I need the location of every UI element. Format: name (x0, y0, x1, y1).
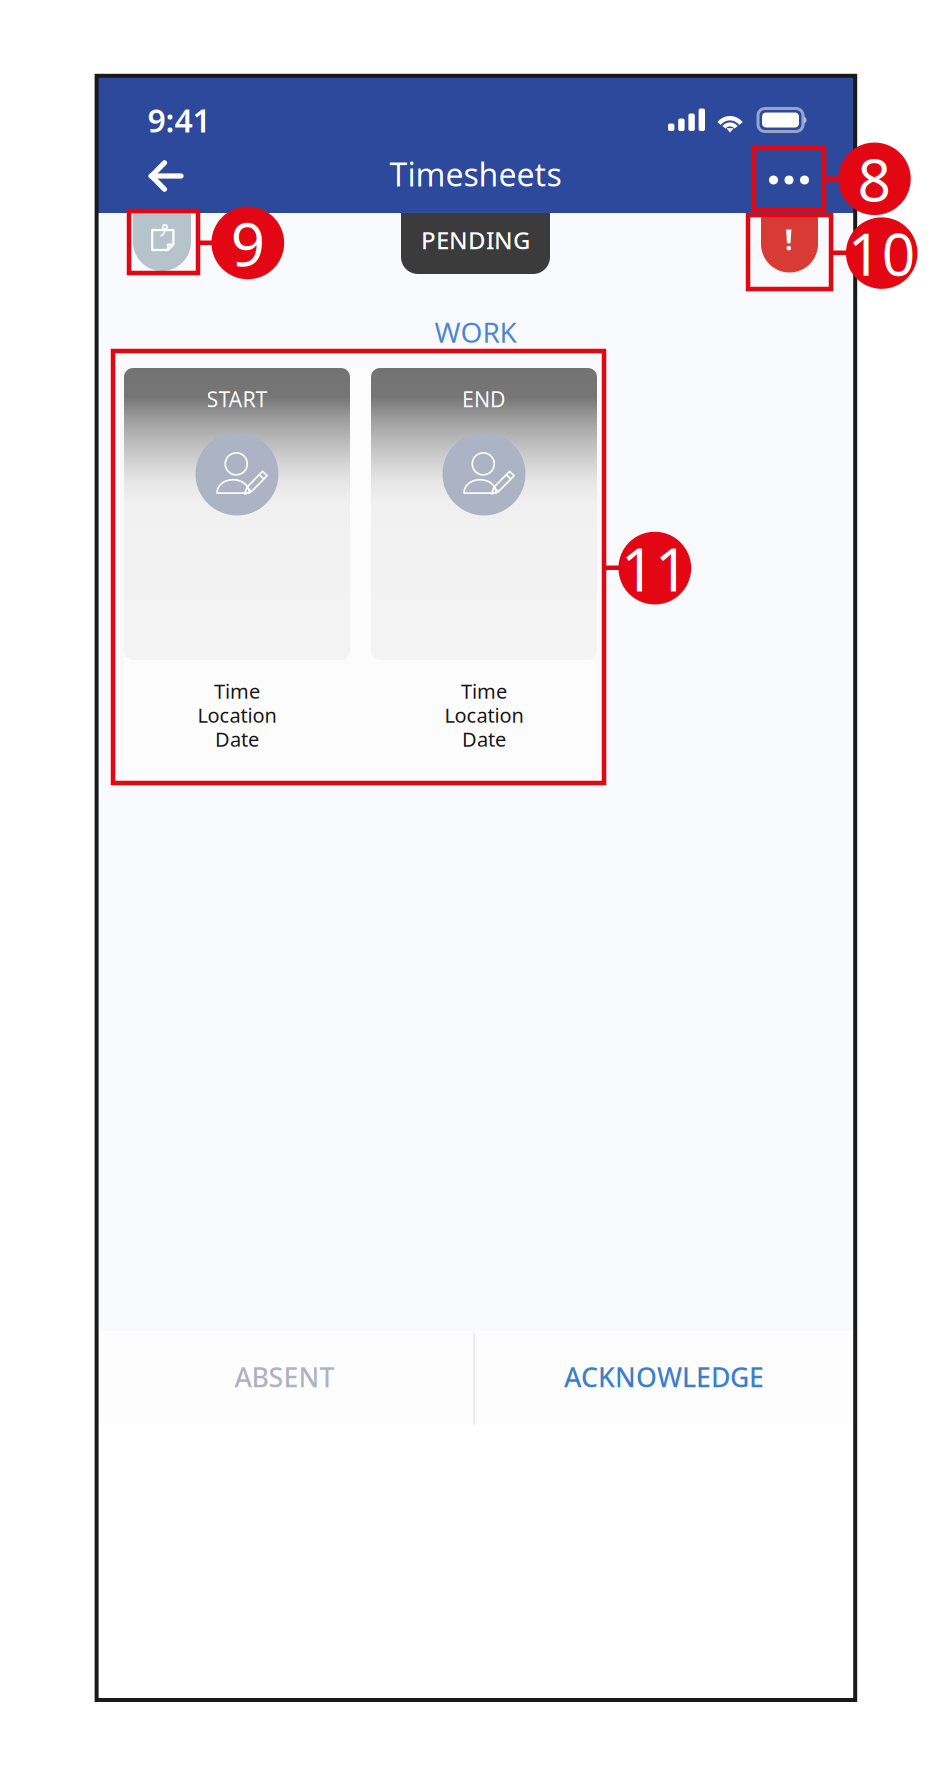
button[interactable]: PENDING (401, 213, 550, 274)
staticText: Date (462, 726, 506, 752)
staticText: 8 (857, 140, 891, 218)
button[interactable]: ACKNOWLEDGE (473, 1330, 855, 1424)
staticText: PENDING (421, 224, 530, 256)
button[interactable]: Notes (133, 213, 191, 271)
staticText: 10 (848, 214, 916, 292)
staticText: WORK (434, 313, 516, 351)
button[interactable]: More options (754, 150, 824, 210)
staticText: Time (214, 678, 260, 704)
staticText: Date (215, 726, 259, 752)
staticText: 9 (231, 203, 265, 283)
staticText: ACKNOWLEDGE (564, 1359, 764, 1395)
staticText: ABSENT (234, 1359, 334, 1395)
staticText: START (206, 385, 267, 413)
staticText: Time (461, 678, 507, 704)
staticText: END (462, 385, 506, 413)
button[interactable]: Alerts (761, 213, 818, 273)
button[interactable]: Back (125, 138, 207, 214)
staticText: 11 (621, 528, 689, 608)
staticText: Location (444, 702, 523, 728)
button[interactable]: END (371, 368, 597, 778)
staticText: Location (197, 702, 276, 728)
staticText: Timesheets (389, 153, 561, 195)
staticText: 9:41 (147, 99, 210, 141)
button[interactable]: ABSENT (96, 1330, 473, 1424)
button[interactable]: START (124, 368, 350, 778)
